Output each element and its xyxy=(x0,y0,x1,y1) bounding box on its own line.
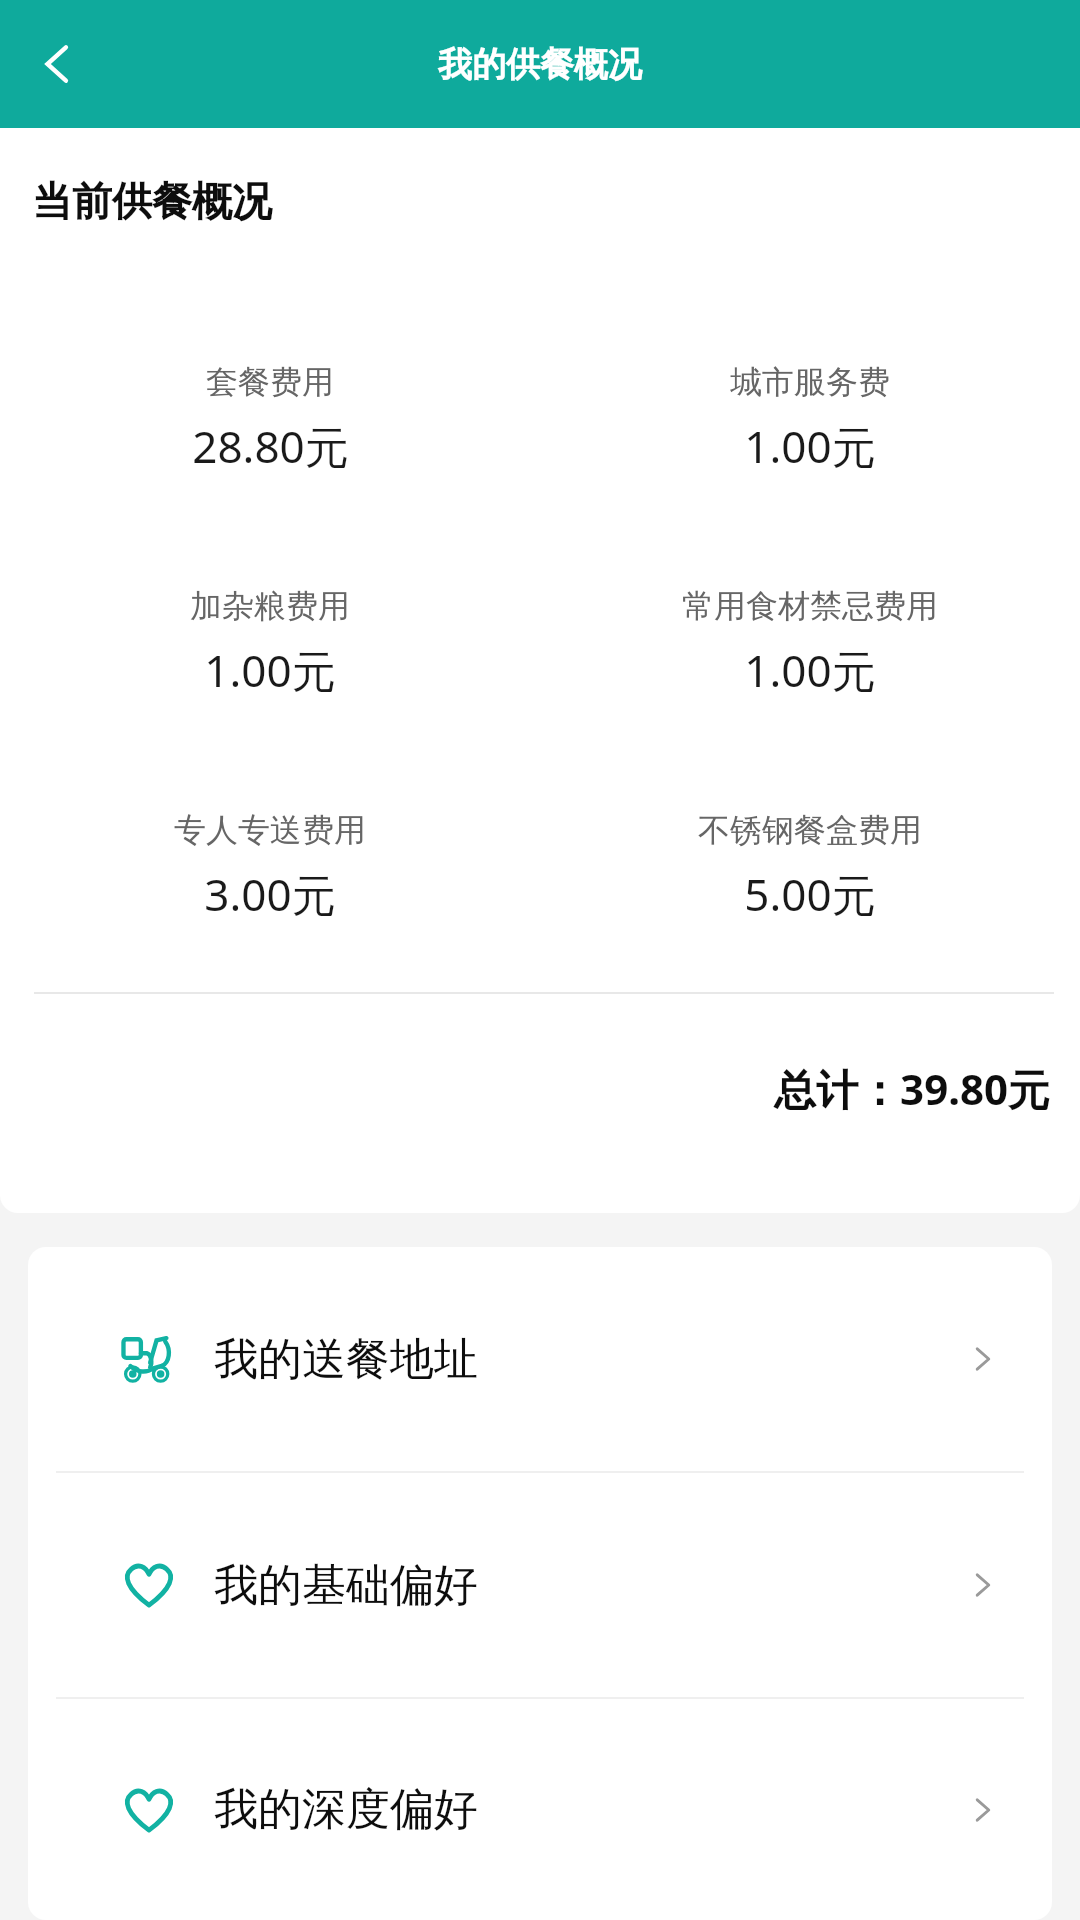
staticText: 1.00元 xyxy=(204,640,336,700)
staticText: 我的基础偏好 xyxy=(214,1558,478,1613)
staticText: 28.80元 xyxy=(192,416,349,476)
staticText: 常用食材禁忌费用 xyxy=(682,586,938,626)
button[interactable]: 我的送餐地址 xyxy=(28,1247,1052,1471)
staticText: 5.00元 xyxy=(744,864,876,924)
button[interactable]: Back xyxy=(14,20,102,108)
staticText: 我的送餐地址 xyxy=(214,1332,478,1387)
staticText: 我的供餐概况 xyxy=(438,43,642,86)
staticText: 不锈钢餐盒费用 xyxy=(698,810,922,850)
staticText: 城市服务费 xyxy=(730,362,890,402)
staticText: 总计：39.80元 xyxy=(0,1060,1050,1117)
staticText: 1.00元 xyxy=(744,416,876,476)
staticText: 当前供餐概况 xyxy=(32,176,272,226)
button[interactable]: 我的深度偏好 xyxy=(28,1699,1052,1920)
staticText: 1.00元 xyxy=(744,640,876,700)
staticText: 我的深度偏好 xyxy=(214,1782,478,1837)
staticText: 加杂粮费用 xyxy=(190,586,350,626)
button[interactable]: 我的基础偏好 xyxy=(28,1473,1052,1697)
staticText: 3.00元 xyxy=(204,864,336,924)
staticText: 套餐费用 xyxy=(206,362,334,402)
staticText: 专人专送费用 xyxy=(174,810,366,850)
